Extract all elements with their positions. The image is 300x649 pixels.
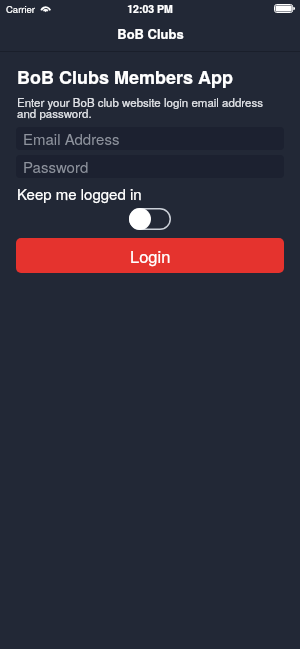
button[interactable]: Keep me logged in toggle — [129, 208, 171, 230]
button[interactable]: Password — [16, 155, 284, 178]
other: Battery full — [274, 4, 295, 13]
staticText: Password — [23, 156, 89, 177]
staticText: 12:03 PM — [127, 1, 173, 16]
other: Wi-Fi — [40, 3, 52, 13]
staticText: Email Address — [23, 128, 120, 149]
button[interactable]: Login — [16, 238, 284, 273]
staticText: Carrier — [6, 2, 36, 16]
staticText: Keep me logged in — [17, 183, 142, 204]
staticText: Login — [130, 244, 171, 268]
staticText: BoB Clubs Members App — [17, 64, 234, 90]
staticText: Enter your BoB club website login email … — [17, 94, 269, 121]
button[interactable]: Email Address — [16, 127, 284, 150]
staticText: BoB Clubs — [117, 24, 184, 43]
